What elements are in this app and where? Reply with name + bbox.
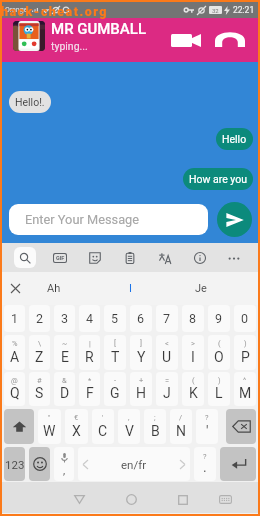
button[interactable]: ^	[234, 372, 256, 406]
button[interactable]: '	[92, 409, 114, 444]
staticText: Orange	[5, 6, 28, 14]
button[interactable]: Keyboard	[212, 484, 238, 515]
button[interactable]: Enter Your Message	[9, 204, 208, 235]
button[interactable]: %	[4, 335, 25, 370]
staticText: Y	[137, 349, 146, 365]
button[interactable]: "	[38, 409, 61, 444]
button[interactable]: enter	[220, 447, 256, 481]
button[interactable]: Clipboard	[119, 247, 141, 268]
staticText: E	[61, 349, 69, 365]
staticText: 123	[5, 458, 25, 471]
button[interactable]: )	[208, 372, 230, 406]
button[interactable]: More	[223, 247, 245, 268]
button[interactable]: GIF	[49, 247, 71, 268]
staticText: |	[89, 339, 91, 348]
button[interactable]: >	[182, 335, 204, 370]
button[interactable]: (	[182, 372, 204, 406]
button[interactable]: \	[29, 335, 50, 370]
staticText: >	[191, 339, 195, 348]
button[interactable]: 8	[182, 305, 204, 332]
button[interactable]: &	[54, 372, 75, 406]
staticText: '	[102, 413, 104, 422]
button[interactable]: +	[130, 372, 152, 406]
button[interactable]: -	[104, 372, 126, 406]
button[interactable]: 2	[29, 305, 50, 332]
button[interactable]: 123	[4, 447, 25, 481]
button[interactable]: Send	[217, 202, 252, 237]
staticText: *	[88, 376, 92, 385]
staticText: 1	[11, 311, 19, 326]
button[interactable]: Translate	[154, 247, 176, 268]
staticText: I	[191, 349, 195, 365]
button[interactable]: Back	[66, 484, 92, 515]
staticText: <	[165, 339, 169, 348]
button[interactable]: =	[156, 372, 178, 406]
button[interactable]: 7	[156, 305, 178, 332]
button[interactable]: Dismiss suggestions	[6, 272, 24, 305]
button[interactable]: 1	[4, 305, 25, 332]
button[interactable]: |	[79, 335, 100, 370]
button[interactable]: ?	[196, 409, 218, 444]
staticText: ?	[205, 413, 209, 422]
staticText: Enter Your Message	[25, 212, 140, 227]
button[interactable]: *	[79, 372, 100, 406]
button[interactable]: /	[170, 409, 192, 444]
button[interactable]: 9	[208, 305, 230, 332]
button[interactable]: emoji	[29, 447, 50, 481]
button[interactable]: 3	[54, 305, 75, 332]
button[interactable]: Search	[14, 247, 36, 268]
button[interactable]: @	[4, 372, 25, 406]
staticText: )	[244, 339, 247, 348]
button[interactable]: €	[65, 409, 88, 444]
staticText: 22:21	[233, 5, 255, 15]
button[interactable]: Call	[211, 26, 249, 54]
button[interactable]: Hello!.	[9, 91, 51, 113]
button[interactable]: Je	[171, 272, 231, 305]
button[interactable]: ,	[118, 409, 140, 444]
staticText: ;	[154, 413, 156, 422]
staticText: .	[203, 459, 207, 475]
button[interactable]: Home	[118, 484, 144, 515]
staticText: F	[86, 385, 94, 401]
staticText: hack-cheat.org	[1, 4, 108, 19]
button[interactable]: back	[226, 409, 256, 444]
button[interactable]: 6	[130, 305, 152, 332]
staticText: /	[179, 413, 183, 422]
button[interactable]: )	[234, 335, 256, 370]
button[interactable]: Ah	[24, 272, 84, 305]
staticText: (	[192, 376, 195, 385]
button[interactable]: 4	[79, 305, 100, 332]
button[interactable]: ,	[54, 447, 74, 481]
button[interactable]: Info	[189, 247, 211, 268]
button[interactable]: 0	[234, 305, 256, 332]
button[interactable]: ?	[194, 447, 216, 481]
button[interactable]: shift	[4, 409, 34, 444]
button[interactable]: How are you	[183, 168, 253, 190]
button[interactable]: [	[104, 335, 126, 370]
button[interactable]: en/fr	[78, 447, 190, 481]
staticText: ]	[140, 339, 142, 348]
button[interactable]: ]	[130, 335, 152, 370]
staticText: 7	[163, 311, 171, 326]
button[interactable]: Stickers	[84, 247, 106, 268]
staticText: M	[239, 385, 252, 401]
staticText: 4	[86, 311, 94, 326]
button[interactable]: 5	[104, 305, 126, 332]
staticText: L	[215, 385, 223, 401]
staticText: V	[125, 423, 134, 439]
button[interactable]: Video call	[167, 26, 205, 54]
button[interactable]: Recents	[170, 484, 196, 515]
staticText: B	[151, 423, 160, 439]
button[interactable]: ;	[144, 409, 166, 444]
button[interactable]: (	[208, 335, 230, 370]
button[interactable]: ~	[54, 335, 75, 370]
button[interactable]: Hello	[216, 128, 253, 150]
button[interactable]: <	[156, 335, 178, 370]
staticText: C	[98, 423, 108, 439]
staticText: O	[214, 349, 224, 365]
staticText: 5	[111, 311, 119, 326]
staticText: Hello	[222, 133, 247, 145]
staticText: Hello!.	[15, 96, 45, 108]
button[interactable]: I	[100, 272, 160, 305]
button[interactable]: #	[29, 372, 50, 406]
